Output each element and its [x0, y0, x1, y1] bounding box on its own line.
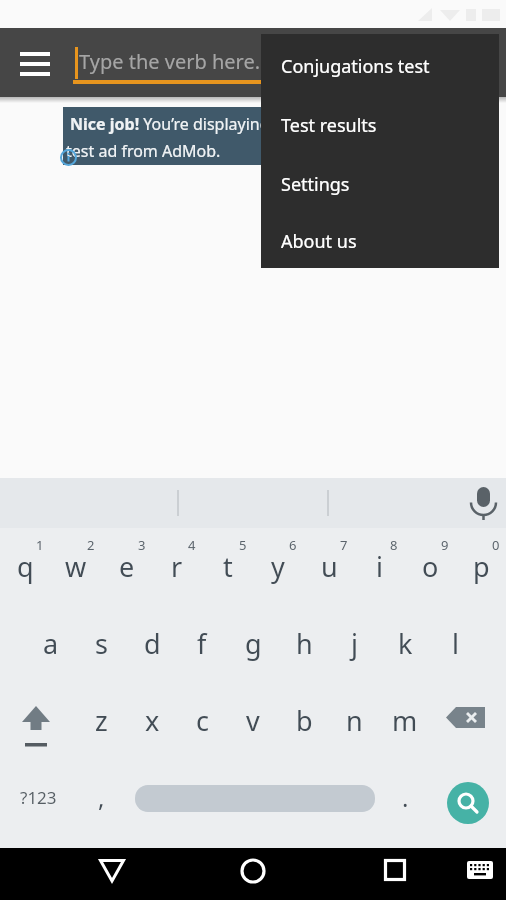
staticText: u: [321, 548, 338, 585]
staticText: g: [245, 625, 262, 662]
staticText: 0: [492, 536, 500, 554]
staticText: j: [351, 625, 358, 662]
button[interactable]: h: [279, 613, 329, 673]
staticText: 7: [340, 536, 348, 554]
button[interactable]: o: [405, 536, 455, 596]
button[interactable]: d: [127, 613, 177, 673]
staticText: z: [95, 702, 108, 739]
staticText: 8: [390, 536, 398, 554]
button[interactable]: r: [152, 536, 202, 596]
staticText: y: [271, 548, 285, 585]
button[interactable]: 8: [369, 515, 419, 575]
button[interactable]: f: [177, 613, 227, 673]
staticText: n: [346, 702, 363, 739]
staticText: w: [65, 548, 87, 585]
staticText: x: [145, 702, 160, 739]
button[interactable]: z: [76, 690, 126, 750]
button[interactable]: ,: [76, 767, 126, 827]
button[interactable]: 1: [15, 515, 65, 575]
button[interactable]: 0: [471, 515, 506, 575]
staticText: 5: [239, 536, 247, 554]
button[interactable]: a: [26, 613, 76, 673]
button[interactable]: u: [304, 536, 354, 596]
button[interactable]: l: [430, 613, 480, 673]
button[interactable]: [445, 698, 497, 742]
staticText: a: [43, 625, 59, 662]
button[interactable]: s: [76, 613, 126, 673]
button[interactable]: [11, 690, 63, 750]
button[interactable]: [462, 856, 498, 884]
staticText: i: [376, 548, 383, 585]
button[interactable]: t: [203, 536, 253, 596]
staticText: Conjugations test: [281, 54, 430, 79]
button[interactable]: Settings: [261, 155, 499, 214]
staticText: test ad from AdMob.: [66, 140, 221, 162]
button[interactable]: 9: [420, 515, 470, 575]
staticText: q: [17, 548, 34, 585]
staticText: Type the verb here.: [79, 48, 261, 75]
button[interactable]: About us: [261, 214, 499, 268]
button[interactable]: 7: [319, 515, 369, 575]
button[interactable]: p: [456, 536, 506, 596]
staticText: 6: [289, 536, 297, 554]
staticText: 1: [36, 536, 44, 554]
button[interactable]: m: [380, 690, 430, 750]
button[interactable]: c: [177, 690, 227, 750]
button[interactable]: Nice job! You’re displaying a: [63, 107, 443, 165]
button[interactable]: [369, 844, 421, 896]
staticText: r: [171, 548, 183, 585]
button[interactable]: 4: [167, 515, 217, 575]
button[interactable]: [447, 782, 489, 824]
button[interactable]: i: [354, 536, 404, 596]
button[interactable]: 5: [218, 515, 268, 575]
button[interactable]: [86, 845, 138, 897]
button[interactable]: b: [279, 690, 329, 750]
staticText: .: [402, 781, 409, 814]
button[interactable]: n: [329, 690, 379, 750]
button[interactable]: e: [102, 536, 152, 596]
staticText: t: [223, 548, 233, 585]
staticText: Nice job! You’re displaying a: [70, 113, 283, 135]
button[interactable]: 3: [117, 515, 167, 575]
button[interactable]: Test results: [261, 96, 499, 155]
staticText: About us: [281, 229, 357, 254]
staticText: d: [144, 625, 161, 662]
button[interactable]: [135, 785, 375, 812]
button[interactable]: [10, 42, 60, 86]
staticText: k: [398, 625, 413, 662]
staticText: ,: [98, 781, 105, 814]
button[interactable]: ?123: [13, 767, 63, 827]
staticText: m: [392, 702, 418, 739]
button[interactable]: v: [228, 690, 278, 750]
staticText: o: [422, 548, 439, 585]
button[interactable]: q: [0, 536, 50, 596]
staticText: Settings: [281, 172, 350, 197]
staticText: Test results: [281, 113, 377, 138]
button[interactable]: 6: [268, 515, 318, 575]
staticText: 3: [138, 536, 146, 554]
staticText: b: [296, 702, 313, 739]
staticText: 4: [188, 536, 196, 554]
button[interactable]: [227, 845, 279, 897]
button[interactable]: Conjugations test: [261, 37, 499, 96]
staticText: 9: [441, 536, 449, 554]
button[interactable]: .: [380, 767, 430, 827]
button[interactable]: j: [329, 613, 379, 673]
staticText: l: [452, 625, 459, 662]
staticText: h: [296, 625, 313, 662]
staticText: 2: [87, 536, 95, 554]
button[interactable]: g: [228, 613, 278, 673]
staticText: s: [95, 625, 108, 662]
button[interactable]: x: [127, 690, 177, 750]
button[interactable]: y: [253, 536, 303, 596]
staticText: ?123: [20, 786, 57, 809]
staticText: v: [246, 702, 260, 739]
staticText: e: [119, 548, 135, 585]
button[interactable]: k: [380, 613, 430, 673]
button[interactable]: w: [51, 536, 101, 596]
button[interactable]: 2: [66, 515, 116, 575]
staticText: f: [197, 625, 207, 662]
staticText: p: [473, 548, 490, 585]
staticText: c: [196, 702, 209, 739]
